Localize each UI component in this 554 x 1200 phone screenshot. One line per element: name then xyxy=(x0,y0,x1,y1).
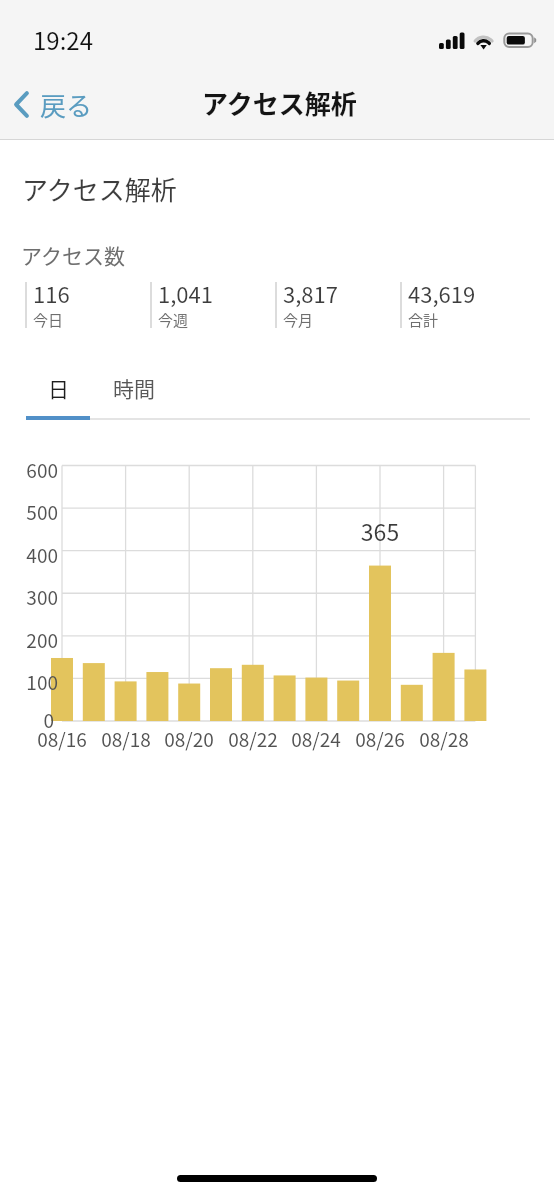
staticText: 43,619 xyxy=(408,277,476,309)
staticText: 200 xyxy=(0,626,58,654)
staticText: 365 xyxy=(345,514,415,547)
staticText: 400 xyxy=(0,541,58,569)
button[interactable]: 時間 xyxy=(96,366,172,420)
staticText: 100 xyxy=(0,668,58,696)
staticText: 08/26 xyxy=(345,725,415,753)
staticText: 合計 xyxy=(408,309,439,331)
other: Battery xyxy=(502,31,540,49)
button[interactable]: 日 xyxy=(26,366,90,420)
staticText: アクセス解析 xyxy=(202,84,357,122)
staticText: 500 xyxy=(0,498,58,526)
staticText: 08/24 xyxy=(281,725,351,753)
staticText: 1,041 xyxy=(158,277,213,309)
staticText: 今週 xyxy=(158,309,189,331)
button[interactable]: 1,041 xyxy=(150,282,275,336)
staticText: 戻る xyxy=(40,86,93,124)
staticText: 300 xyxy=(0,583,58,611)
staticText: 116 xyxy=(33,277,70,309)
staticText: 08/22 xyxy=(218,725,288,753)
staticText: 今日 xyxy=(33,309,64,331)
other: Wi-Fi xyxy=(472,31,496,49)
staticText: 08/20 xyxy=(154,725,224,753)
staticText: アクセス解析 xyxy=(22,170,177,208)
staticText: アクセス数 xyxy=(21,240,125,270)
button[interactable]: 116 xyxy=(25,282,150,336)
staticText: 今月 xyxy=(283,309,314,331)
staticText: 3,817 xyxy=(283,277,338,309)
staticText: 08/18 xyxy=(91,725,161,753)
staticText: 600 xyxy=(0,456,58,484)
button[interactable]: 43,619 xyxy=(400,282,525,336)
staticText: 0 xyxy=(0,706,54,734)
staticText: 19:24 xyxy=(33,22,93,57)
button[interactable]: 3,817 xyxy=(275,282,400,336)
staticText: 08/16 xyxy=(27,725,97,753)
staticText: 日 xyxy=(48,373,69,403)
staticText: 08/28 xyxy=(409,725,479,753)
other: Cellular signal xyxy=(439,32,465,49)
staticText: 時間 xyxy=(113,373,155,403)
button[interactable]: 戻る xyxy=(0,81,109,127)
